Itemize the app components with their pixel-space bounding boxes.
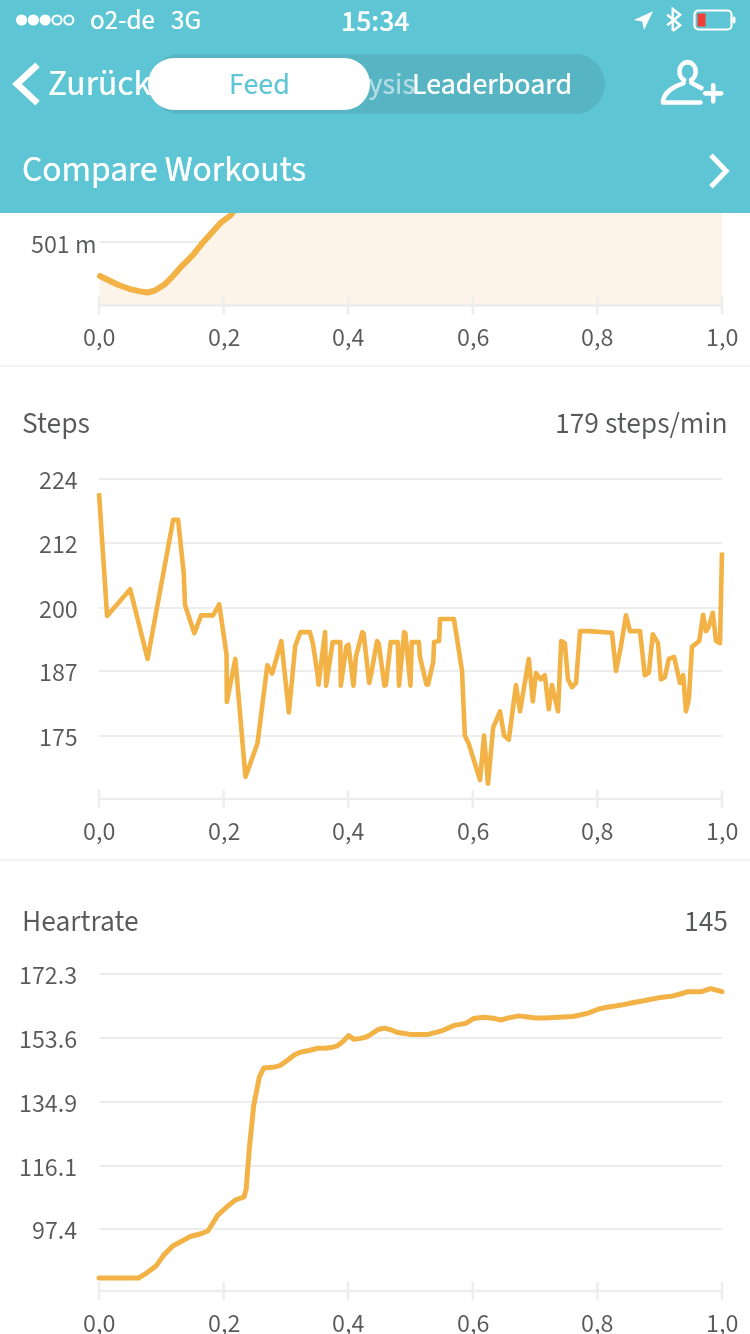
staticText: Steps xyxy=(22,403,90,445)
staticText: 224 xyxy=(39,462,78,499)
staticText: 0,0 xyxy=(83,319,116,356)
staticText: o2-de xyxy=(90,1,155,39)
staticText: Feed xyxy=(231,63,292,106)
staticText: Zurück xyxy=(48,59,152,110)
button[interactable]: Analysis xyxy=(313,54,415,114)
staticText: 1,0 xyxy=(706,813,739,850)
staticText: 0,0 xyxy=(83,1305,116,1334)
staticText: 145 xyxy=(684,901,728,943)
staticText: Leaderboard xyxy=(412,63,573,106)
staticText: 501 m xyxy=(31,226,97,263)
button[interactable]: Leaderboard xyxy=(412,54,573,114)
staticText: 212 xyxy=(39,526,78,563)
staticText: 1,0 xyxy=(706,1305,739,1334)
staticText: 0,6 xyxy=(457,319,490,356)
staticText: 153.6 xyxy=(19,1021,78,1058)
staticText: 3G xyxy=(171,1,202,39)
staticText: 0,8 xyxy=(581,1305,614,1334)
staticText: Analysis xyxy=(313,63,415,106)
staticText: 172.3 xyxy=(19,957,78,994)
staticText: 0,4 xyxy=(332,1305,365,1334)
staticText: 0,0 xyxy=(83,813,116,850)
staticText: 134.9 xyxy=(19,1085,78,1122)
staticText: 200 xyxy=(39,591,78,628)
staticText: 0,6 xyxy=(457,813,490,850)
staticText: 0,2 xyxy=(208,1305,241,1334)
staticText: 15:34 xyxy=(341,0,410,40)
staticText: 0,4 xyxy=(332,813,365,850)
staticText: 0,2 xyxy=(208,813,241,850)
staticText: 187 xyxy=(39,654,78,691)
staticText: Feed xyxy=(229,63,290,106)
button[interactable]: Compare Workouts xyxy=(0,128,750,213)
button[interactable]: Feed xyxy=(148,58,370,110)
button[interactable]: Add friend xyxy=(654,49,734,119)
staticText: 175 xyxy=(39,719,78,756)
staticText: 0,6 xyxy=(457,1305,490,1334)
staticText: 179 steps/min xyxy=(555,403,728,445)
staticText: 97.4 xyxy=(32,1212,78,1249)
staticText: 0,4 xyxy=(332,319,365,356)
staticText: 0,8 xyxy=(581,319,614,356)
button[interactable]: Feed xyxy=(231,54,292,114)
staticText: 116.1 xyxy=(19,1149,78,1186)
staticText: 0,8 xyxy=(581,813,614,850)
button[interactable]: Zurück xyxy=(0,40,162,128)
staticText: Heartrate xyxy=(22,901,139,943)
staticText: Compare Workouts xyxy=(22,145,307,196)
staticText: 1,0 xyxy=(706,319,739,356)
staticText: 0,2 xyxy=(208,319,241,356)
